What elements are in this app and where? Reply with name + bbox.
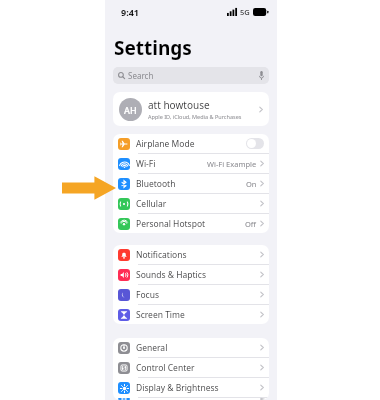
button[interactable]: Screen Time (113, 305, 269, 324)
staticText: Bluetooth (136, 178, 176, 190)
staticText: Control Center (136, 362, 195, 374)
staticText: On (246, 179, 257, 189)
staticText: Focus (136, 289, 159, 301)
staticText: General (136, 342, 168, 354)
button[interactable]: Wi-Fi (113, 154, 269, 173)
staticText: Settings (114, 35, 192, 61)
staticText: 5G (240, 7, 250, 17)
staticText: Wi-Fi Example (207, 159, 257, 169)
button[interactable]: Bluetooth (113, 174, 269, 193)
staticText: att howtouse (148, 98, 210, 112)
staticText: Notifications (136, 249, 187, 261)
staticText: Sounds & Haptics (136, 269, 206, 281)
staticText: Personal Hotspot (136, 218, 206, 230)
staticText: Cellular (136, 198, 167, 210)
staticText: Off (245, 219, 257, 229)
button[interactable]: Display & Brightness (113, 378, 269, 397)
button[interactable]: Notifications (113, 245, 269, 264)
staticText: Display & Brightness (136, 382, 219, 394)
staticText: Airplane Mode (136, 138, 195, 150)
staticText: AH (124, 104, 137, 116)
staticText: 9:41 (121, 6, 139, 18)
button[interactable]: Focus (113, 285, 269, 304)
staticText: Search (128, 70, 154, 81)
button[interactable]: Control Center (113, 358, 269, 377)
other: Pointer arrow to Bluetooth (62, 174, 116, 202)
button[interactable]: Airplane Mode (113, 134, 269, 153)
staticText: Screen Time (136, 309, 185, 321)
staticText: Wi-Fi (136, 158, 156, 170)
button[interactable]: Airplane Mode toggle (246, 138, 264, 149)
button[interactable]: Sounds & Haptics (113, 265, 269, 284)
staticText: Apple ID, iCloud, Media & Purchases (148, 113, 242, 120)
button[interactable]: AH (113, 92, 269, 126)
button[interactable]: Cellular (113, 194, 269, 213)
button[interactable]: Search (113, 67, 269, 84)
button[interactable]: Personal Hotspot (113, 214, 269, 233)
button[interactable]: General (113, 338, 269, 357)
button[interactable]: Home Screen (113, 398, 269, 400)
